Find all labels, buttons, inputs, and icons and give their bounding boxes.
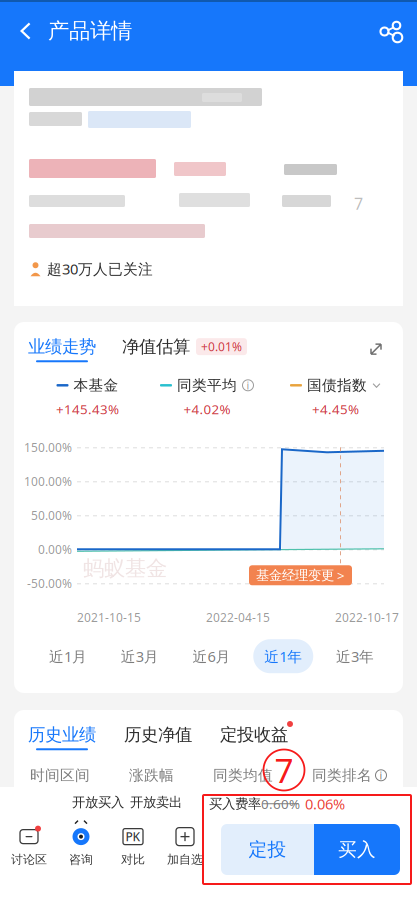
staticText: 本基金 — [73, 376, 118, 394]
staticText: 7 — [274, 748, 293, 792]
staticText: 超30万人已关注 — [47, 259, 153, 278]
staticText: -50.00% — [27, 575, 72, 591]
staticText: 国债指数 — [307, 376, 367, 394]
staticText: 蚂蚁基金 — [83, 555, 167, 581]
staticText: 买入 — [338, 838, 376, 861]
staticText: 对比 — [121, 852, 145, 867]
button[interactable]: 定投收益 — [220, 724, 288, 750]
staticText: 涨跌幅 — [129, 766, 174, 784]
staticText: 50.00% — [31, 507, 72, 523]
staticText: 2021-10-15 — [77, 609, 141, 625]
button[interactable]: 近1年 — [253, 639, 313, 673]
staticText: 近1月 — [49, 646, 87, 666]
staticText: +0.01% — [201, 339, 242, 355]
staticText: +145.43% — [56, 400, 119, 418]
staticText: > — [337, 566, 345, 584]
button[interactable]: Share — [369, 9, 413, 53]
staticText: 开放卖出 — [130, 794, 182, 810]
button[interactable]: 历史净值 — [124, 724, 192, 750]
staticText: 100.00% — [24, 473, 72, 489]
staticText: i — [246, 378, 249, 392]
button[interactable]: 讨论区 — [3, 824, 55, 869]
staticText: 咨询 — [69, 852, 93, 867]
staticText: 近6月 — [192, 646, 230, 666]
staticText: 时间区间 — [30, 766, 90, 784]
button[interactable]: PK — [107, 824, 159, 869]
staticText: 0.60% — [261, 795, 300, 813]
button[interactable]: Back — [4, 9, 48, 53]
staticText: 同类平均 — [177, 376, 237, 394]
staticText: +4.45% — [312, 400, 359, 418]
button[interactable]: 近1月 — [38, 639, 98, 673]
button[interactable]: Expand chart — [363, 336, 389, 362]
button[interactable]: 近6月 — [181, 639, 241, 673]
staticText: 7 — [354, 193, 363, 214]
staticText: 讨论区 — [11, 852, 47, 867]
staticText: i — [379, 768, 382, 782]
staticText: 业绩走势 — [28, 336, 96, 357]
button[interactable]: 买入 — [314, 824, 400, 875]
button[interactable]: 近3年 — [325, 639, 385, 673]
staticText: 定投 — [248, 838, 286, 861]
staticText: 2022-04-15 — [206, 609, 270, 625]
staticText: 买入费率 — [209, 796, 261, 812]
staticText: 0.06% — [305, 794, 345, 813]
staticText: 加自选 — [167, 852, 203, 867]
button[interactable]: 国债指数 — [290, 376, 381, 418]
button[interactable]: 近3月 — [110, 639, 170, 673]
staticText: 同类排名 — [312, 766, 372, 784]
button[interactable]: 加自选 — [159, 824, 211, 869]
staticText: +4.02% — [183, 400, 230, 418]
button[interactable]: 定投 — [221, 824, 314, 875]
button[interactable]: 咨询 — [55, 824, 107, 869]
staticText: 产品详情 — [48, 18, 132, 44]
staticText: PK — [125, 829, 140, 845]
staticText: 近3年 — [336, 646, 374, 666]
button[interactable]: 净值估算 — [122, 336, 247, 362]
staticText: 2022-10-17 — [335, 609, 399, 625]
staticText: 开放买入 — [72, 794, 124, 810]
staticText: 历史净值 — [124, 724, 192, 745]
staticText: 近3月 — [121, 646, 159, 666]
staticText: 净值估算 — [122, 336, 190, 357]
staticText: 定投收益 — [220, 724, 288, 745]
staticText: 基金经理变更 — [256, 567, 334, 583]
staticText: 0.00% — [38, 541, 72, 557]
button[interactable]: 业绩走势 — [28, 336, 96, 362]
staticText: 近1年 — [264, 646, 302, 666]
staticText: 历史业绩 — [28, 724, 96, 745]
staticText: 同类均值 — [213, 766, 273, 784]
button[interactable]: 历史业绩 — [28, 724, 96, 750]
staticText: 150.00% — [24, 439, 72, 455]
